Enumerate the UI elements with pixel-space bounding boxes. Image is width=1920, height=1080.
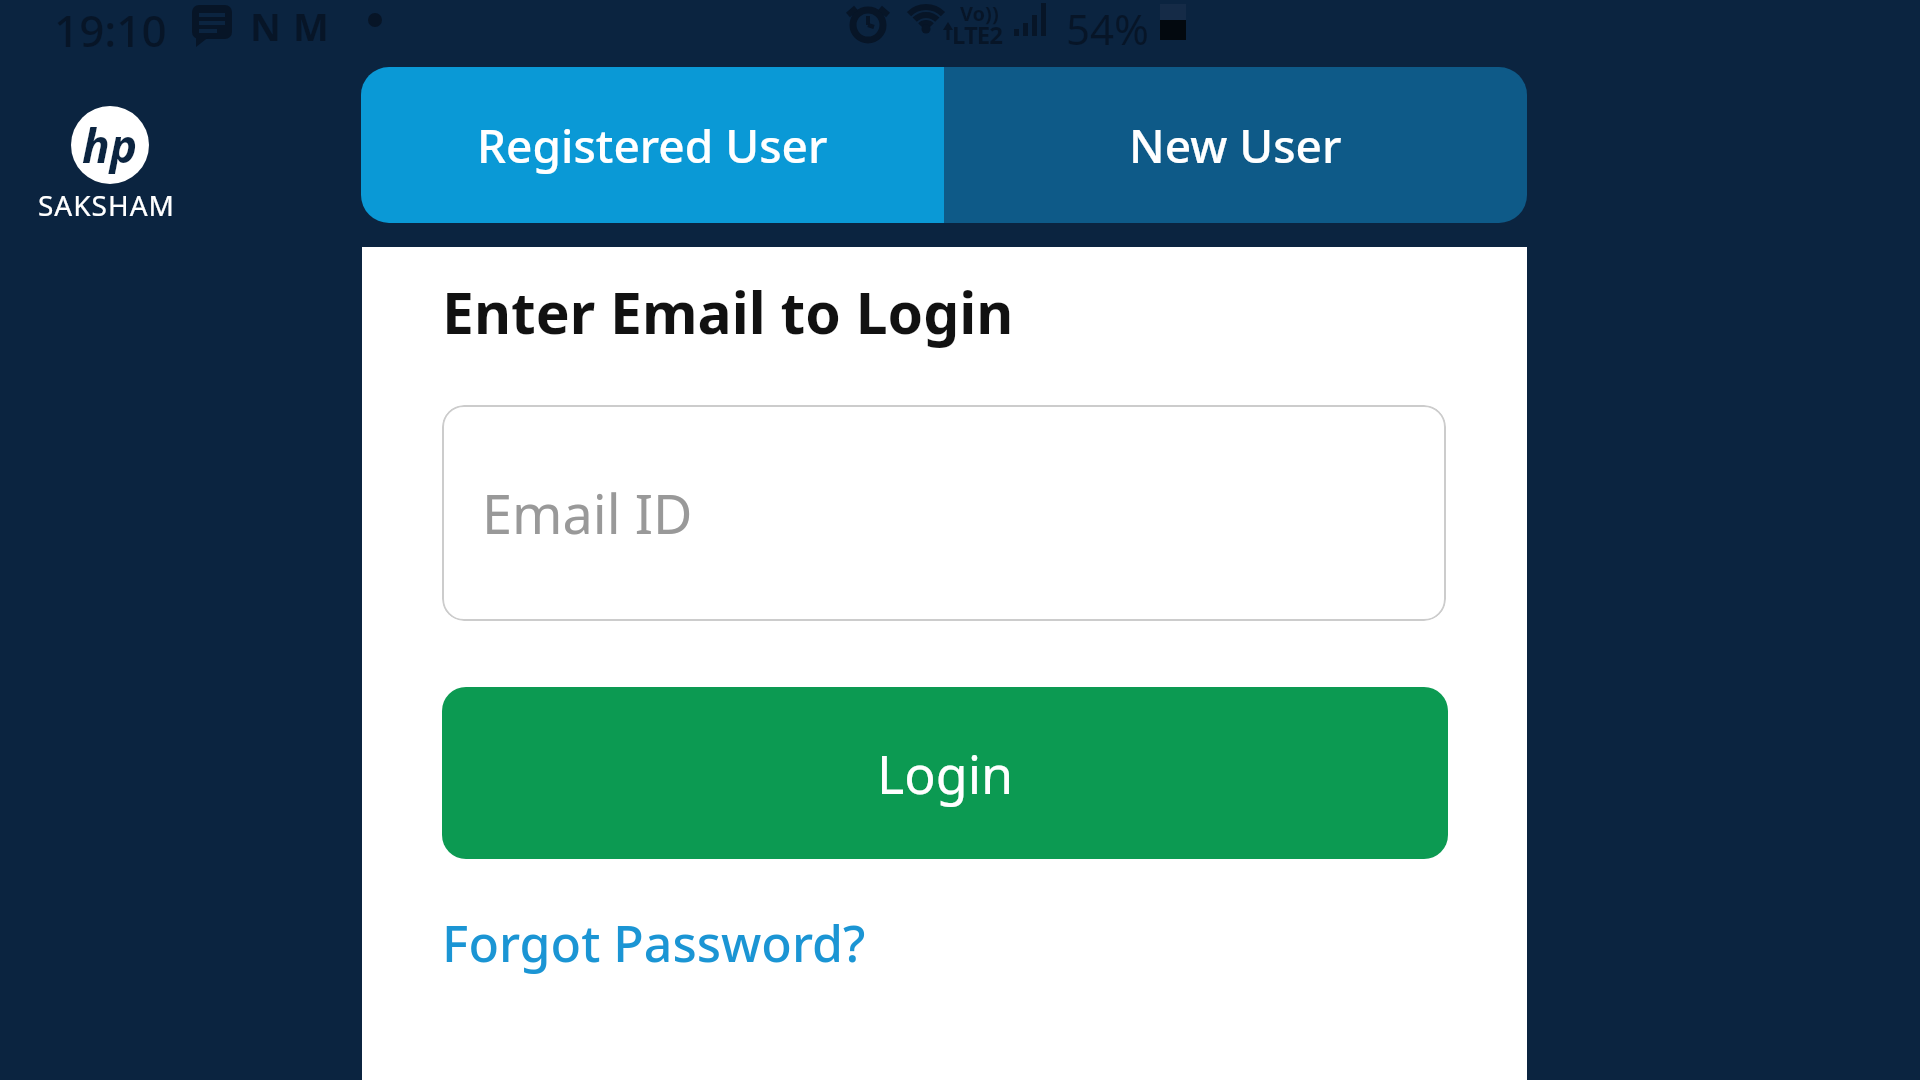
staticText: SAKSHAM (38, 186, 176, 224)
staticText: Login (877, 738, 1014, 809)
staticText: Vo)) (960, 0, 999, 27)
button[interactable]: Email ID (442, 405, 1446, 621)
staticText: Enter Email to Login (442, 273, 1014, 351)
button[interactable]: Login (442, 687, 1448, 859)
staticText: M (293, 0, 329, 48)
staticText: 54% (1066, 0, 1149, 48)
button[interactable]: Forgot Password? (442, 909, 866, 977)
staticText: N (250, 0, 281, 48)
staticText: Registered User (477, 114, 828, 177)
staticText: hp (82, 114, 138, 177)
staticText: Email ID (482, 476, 693, 550)
staticText: 19:10 (54, 0, 167, 48)
button[interactable]: Registered User (361, 67, 944, 223)
button[interactable]: New User (944, 67, 1527, 223)
staticText: LTE2 (952, 18, 1002, 51)
staticText: New User (1129, 114, 1342, 177)
